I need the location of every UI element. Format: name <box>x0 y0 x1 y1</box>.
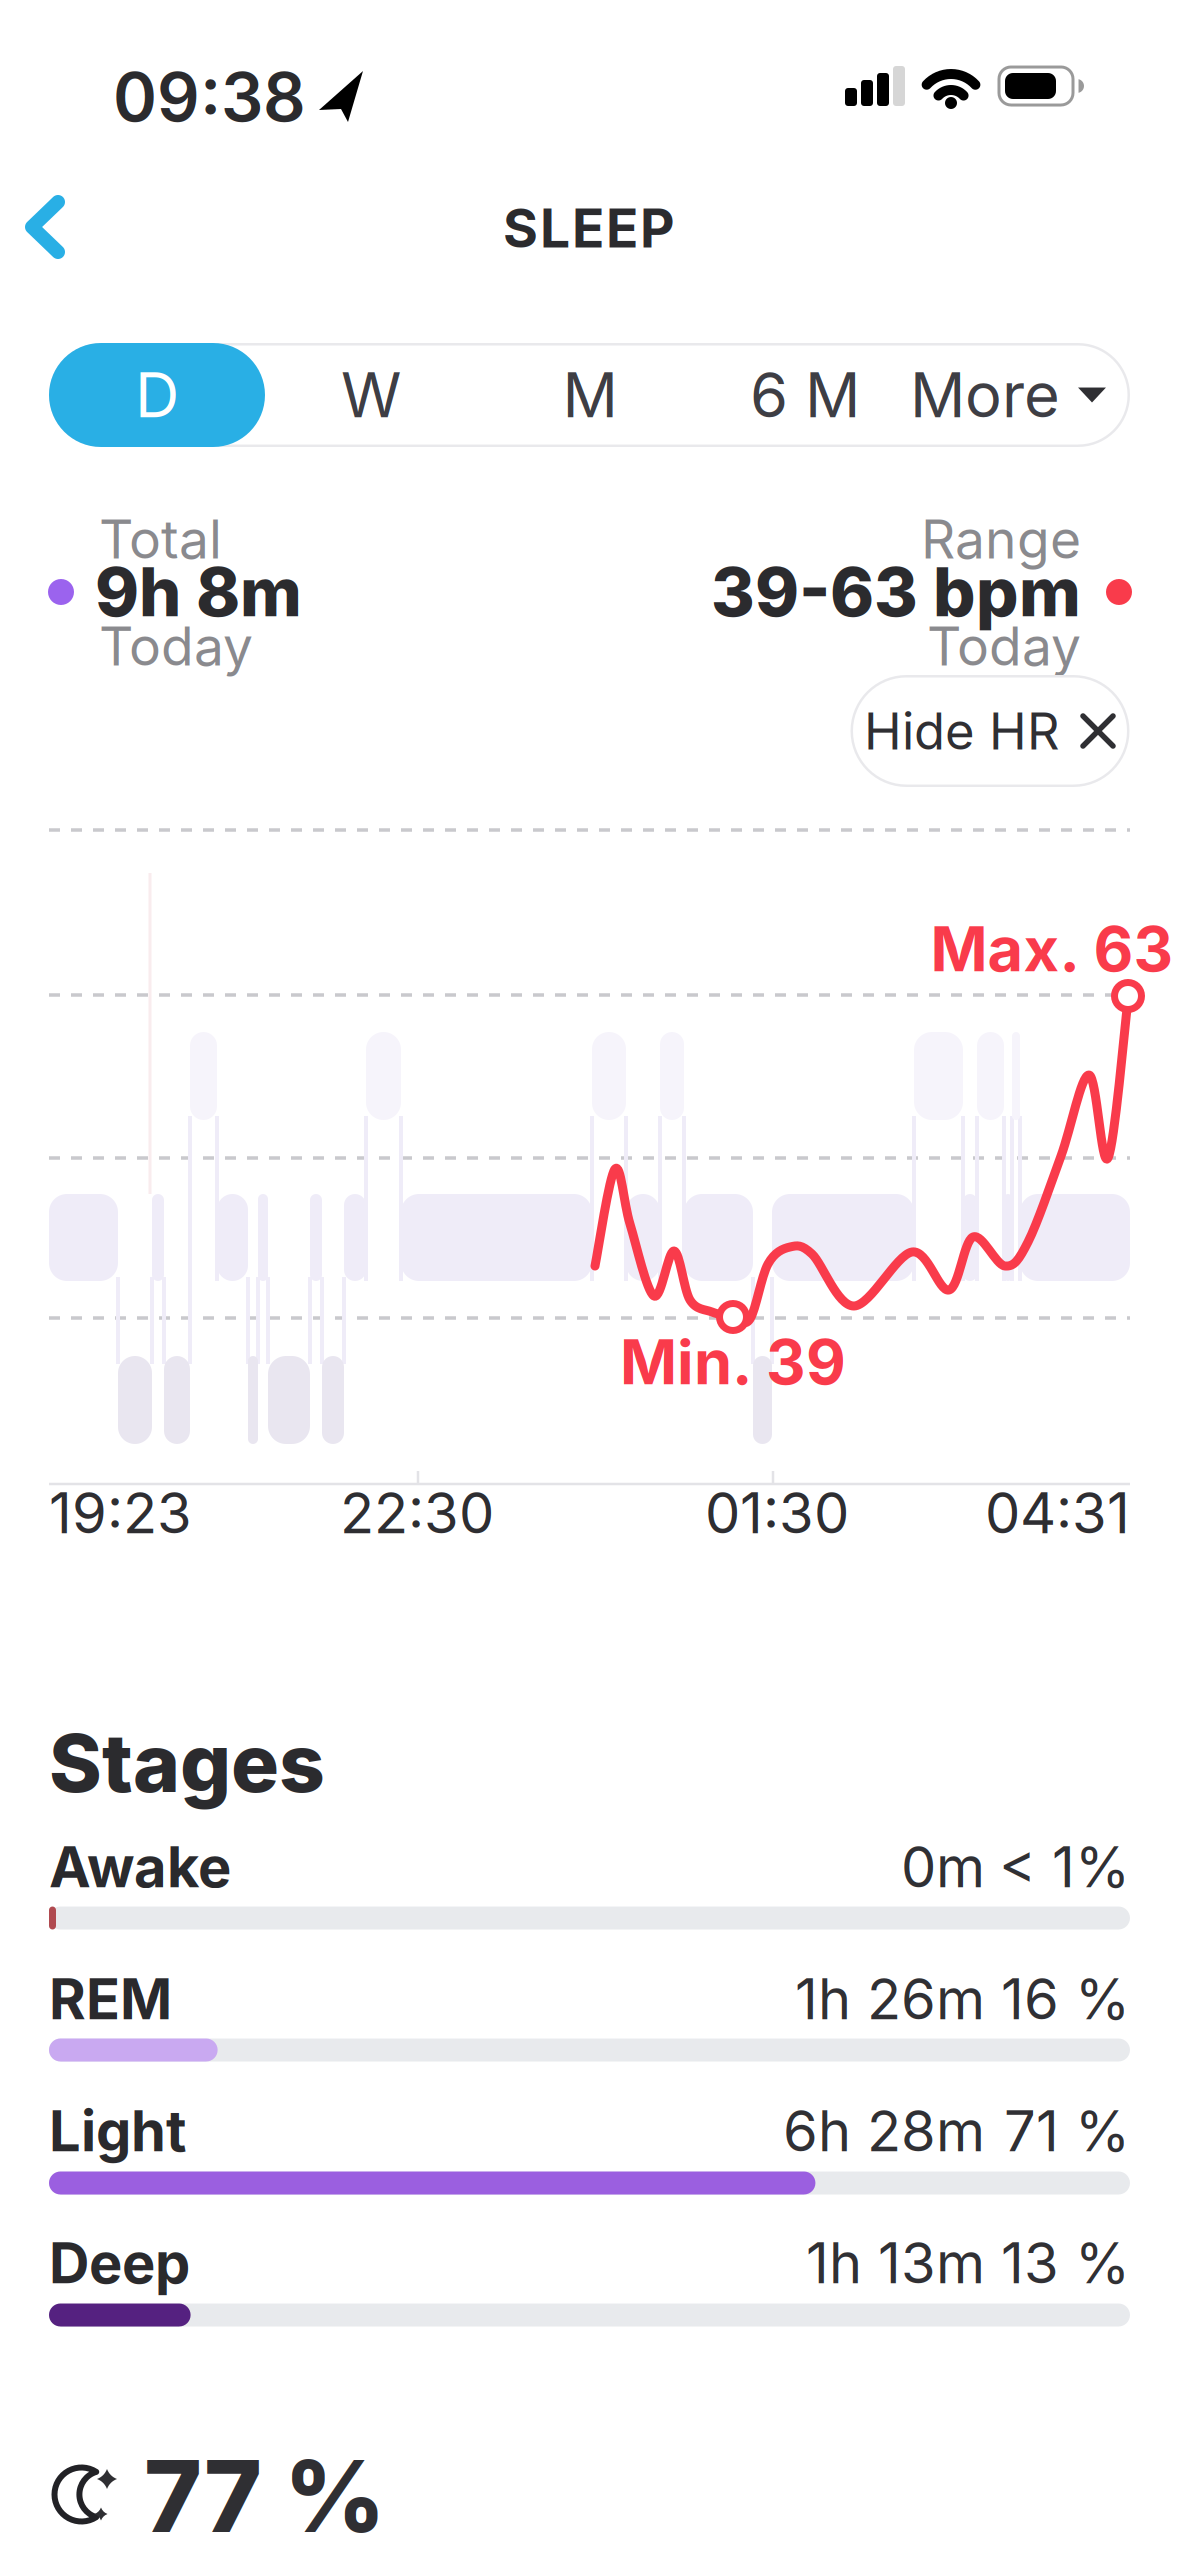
staticText: 13 % <box>1001 2229 1130 2297</box>
staticText: Today <box>99 614 253 678</box>
staticText: 1h 13m <box>806 2229 985 2297</box>
button[interactable]: More <box>893 343 1123 447</box>
staticText: Light <box>49 2097 187 2165</box>
staticText: Min. 39 <box>620 1325 846 1399</box>
staticText: 01:30 <box>705 1479 849 1547</box>
staticText: 77 % <box>144 2436 386 2556</box>
button[interactable]: 6 M <box>715 343 895 447</box>
staticText: Total <box>99 507 222 571</box>
staticText: Today <box>927 614 1081 678</box>
staticText: 1h 26m <box>795 1965 985 2033</box>
staticText: Awake <box>49 1833 231 1901</box>
button[interactable]: W <box>281 343 461 447</box>
button[interactable]: M <box>500 343 680 447</box>
staticText: Hide HR <box>864 700 1060 762</box>
button[interactable]: Back <box>18 188 72 266</box>
staticText: 71 % <box>1004 2097 1130 2165</box>
staticText: 9h 8m <box>95 552 302 632</box>
staticText: 39-63 bpm <box>711 552 1081 632</box>
staticText: REM <box>49 1965 172 2033</box>
staticText: 04:31 <box>985 1479 1130 1547</box>
staticText: 6 M <box>750 358 860 432</box>
button[interactable]: D <box>49 343 265 447</box>
staticText: 0m <box>901 1833 985 1901</box>
staticText: 22:30 <box>340 1479 494 1547</box>
staticText: Max. 63 <box>930 912 1173 986</box>
staticText: 09:38 <box>113 57 306 137</box>
staticText: D <box>135 358 179 432</box>
staticText: Range <box>921 507 1081 571</box>
staticText: < 1% <box>999 1833 1130 1901</box>
staticText: M <box>562 358 617 432</box>
staticText: Stages <box>49 1715 325 1811</box>
staticText: W <box>341 358 401 432</box>
staticText: 19:23 <box>49 1479 192 1547</box>
staticText: 6h 28m <box>783 2097 985 2165</box>
staticText: 16 % <box>1001 1965 1130 2033</box>
staticText: More <box>910 358 1060 432</box>
staticText: SLEEP <box>503 196 675 260</box>
button[interactable]: Hide HR <box>850 675 1129 787</box>
staticText: Deep <box>49 2229 190 2297</box>
